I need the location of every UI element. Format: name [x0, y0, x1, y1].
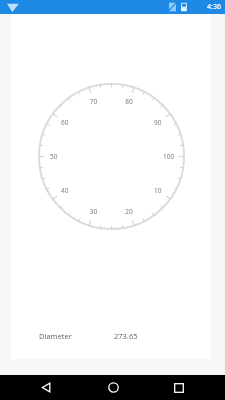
staticText: 4:36	[207, 2, 221, 12]
button[interactable]: Recent apps	[159, 375, 199, 400]
button[interactable]: Home	[93, 375, 133, 400]
staticText: 273.65	[114, 331, 138, 341]
button[interactable]: Back	[26, 375, 66, 400]
staticText: Diameter	[39, 331, 72, 341]
